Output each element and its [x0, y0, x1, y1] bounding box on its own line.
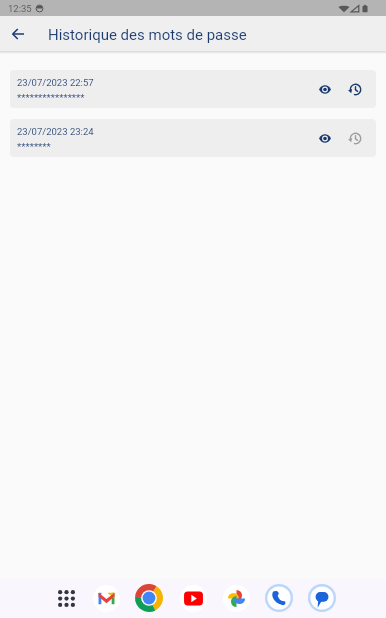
- button[interactable]: 23/07/2023 22:57: [10, 70, 376, 108]
- button[interactable]: Restaurer: [340, 123, 370, 153]
- button[interactable]: Google Photos: [219, 581, 253, 615]
- button[interactable]: Gmail: [89, 581, 123, 615]
- button[interactable]: Restaurer: [340, 74, 370, 104]
- button[interactable]: Toutes les applications: [49, 581, 83, 615]
- button[interactable]: Téléphone: [262, 581, 296, 615]
- button[interactable]: Afficher le mot de passe: [310, 74, 340, 104]
- staticText: ********: [17, 141, 51, 152]
- button[interactable]: Afficher le mot de passe: [310, 123, 340, 153]
- staticText: 23/07/2023 22:57: [17, 77, 94, 88]
- staticText: ****************: [17, 92, 85, 103]
- button[interactable]: Chrome: [132, 581, 166, 615]
- staticText: 12:35: [8, 3, 32, 14]
- button[interactable]: YouTube: [176, 581, 210, 615]
- button[interactable]: 23/07/2023 23:24: [10, 119, 376, 157]
- staticText: 23/07/2023 23:24: [17, 126, 94, 137]
- button[interactable]: Retour: [0, 16, 36, 51]
- button[interactable]: Messages: [305, 581, 339, 615]
- staticText: Historique des mots de passe: [48, 26, 247, 44]
